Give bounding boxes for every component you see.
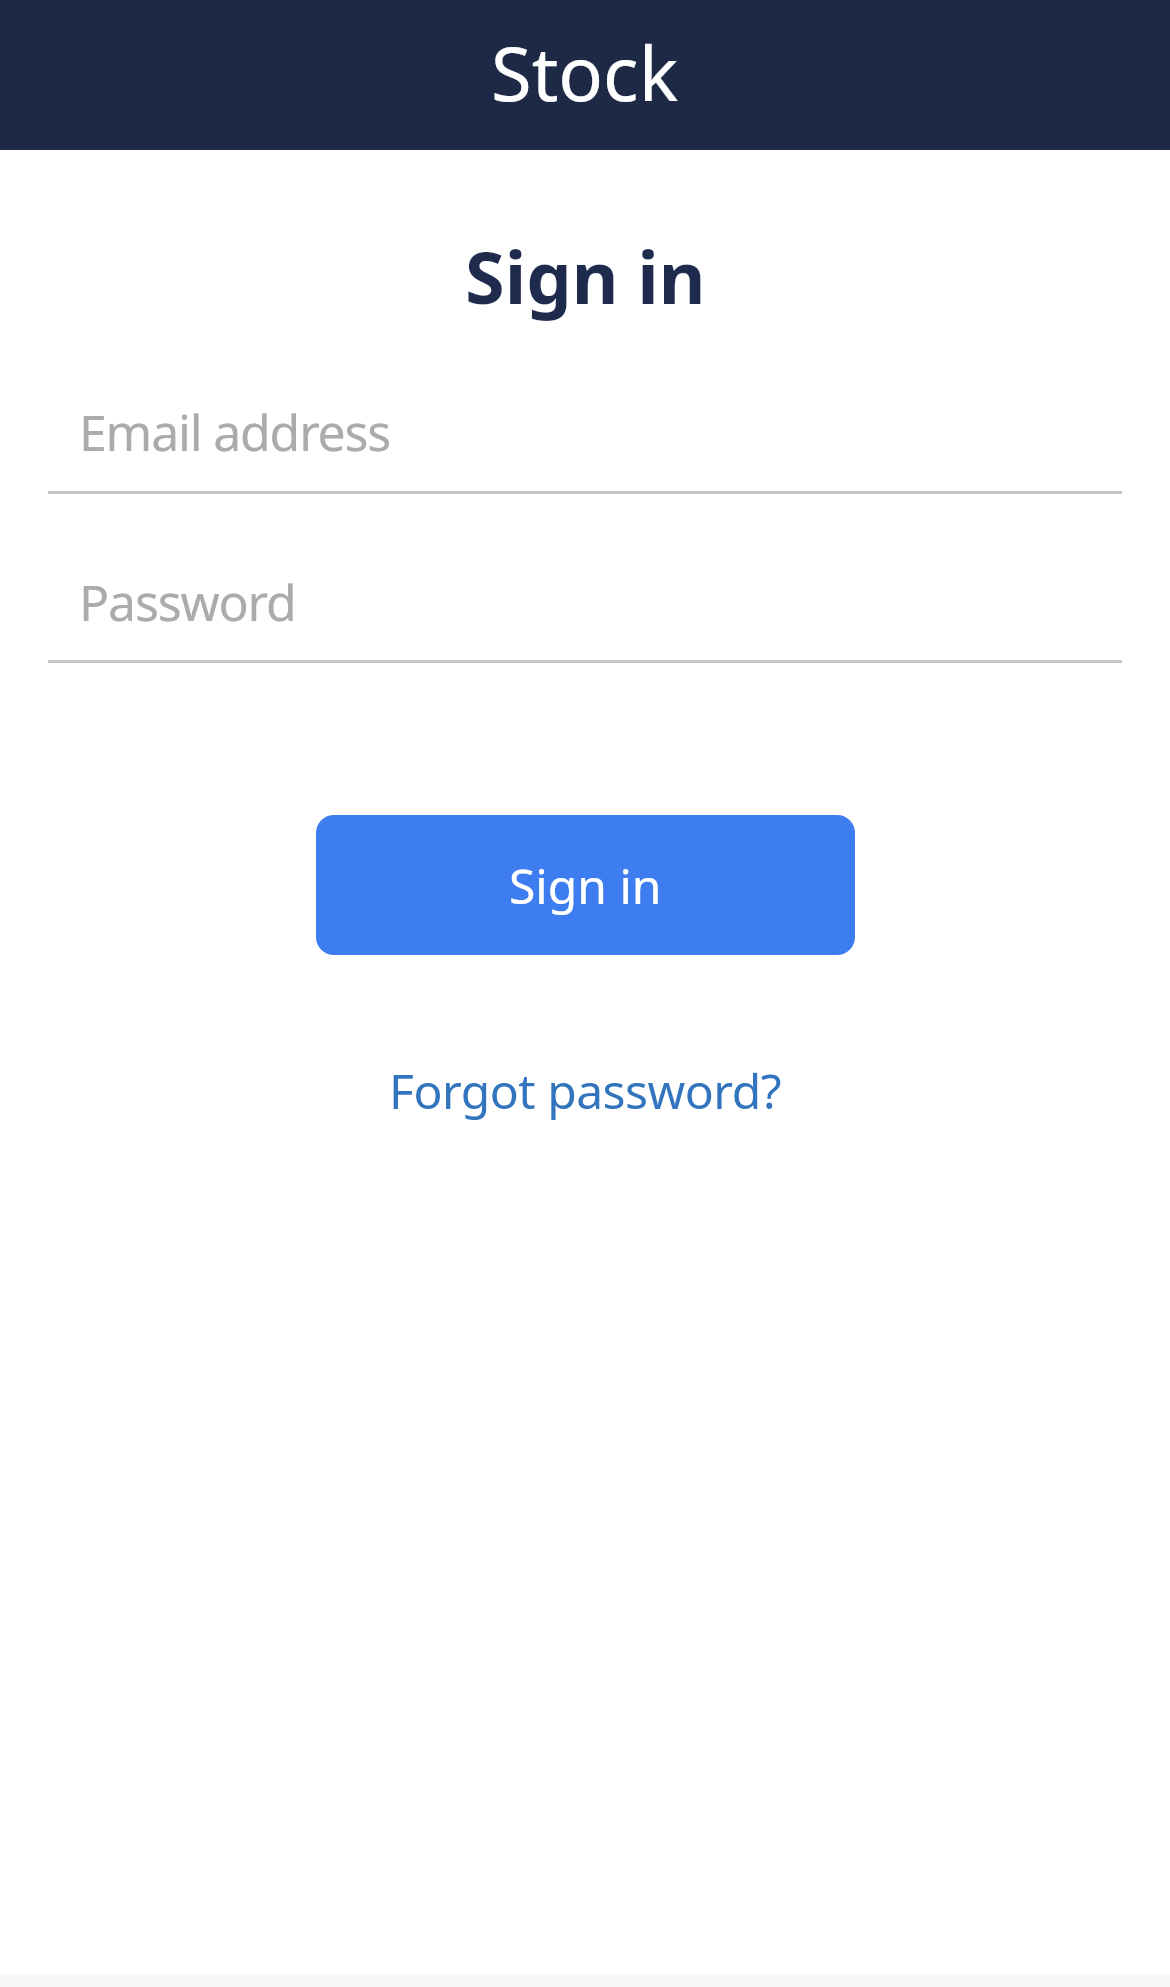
button[interactable]: Password <box>79 552 1170 652</box>
staticText: Sign in <box>465 227 706 325</box>
staticText: Password <box>79 568 296 636</box>
button[interactable]: Email address <box>79 382 1170 482</box>
staticText: Stock <box>491 22 679 123</box>
button[interactable]: Sign in <box>316 815 855 955</box>
staticText: Forgot password? <box>389 1058 782 1123</box>
staticText: Email address <box>79 398 391 466</box>
button[interactable]: Forgot password? <box>389 1040 782 1140</box>
staticText: Sign in <box>509 853 662 918</box>
